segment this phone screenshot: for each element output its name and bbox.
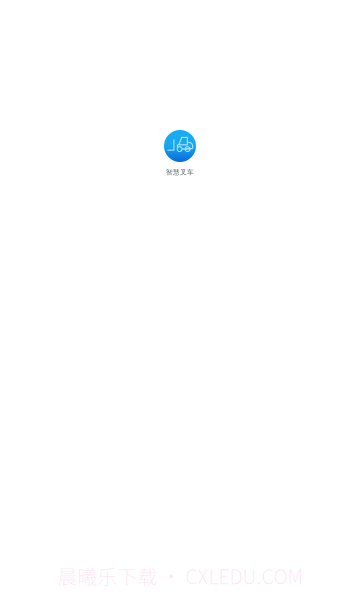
staticText: 晨曦乐下载 • CXLEDU.COM <box>57 562 302 590</box>
staticText: 智慧叉车 <box>166 168 194 176</box>
button[interactable]: 智慧叉车 <box>148 130 212 176</box>
